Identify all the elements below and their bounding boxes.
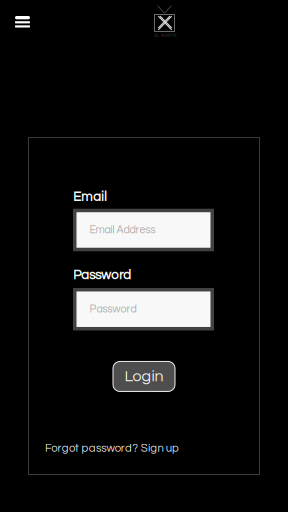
button[interactable]: Menu [0, 0, 38, 35]
button[interactable]: Email Address [73, 209, 214, 251]
button[interactable]: Login [113, 361, 175, 391]
staticText: Email Address [89, 224, 155, 235]
button[interactable]: Password [73, 288, 214, 330]
button[interactable]: Forgot password? Sign up [28, 442, 179, 454]
staticText: EL NORTE [154, 33, 176, 38]
staticText: Forgot password? Sign up [45, 442, 179, 454]
staticText: Email [73, 190, 107, 204]
staticText: Password [73, 268, 131, 282]
staticText: Login [124, 368, 163, 385]
staticText: Password [89, 304, 136, 315]
